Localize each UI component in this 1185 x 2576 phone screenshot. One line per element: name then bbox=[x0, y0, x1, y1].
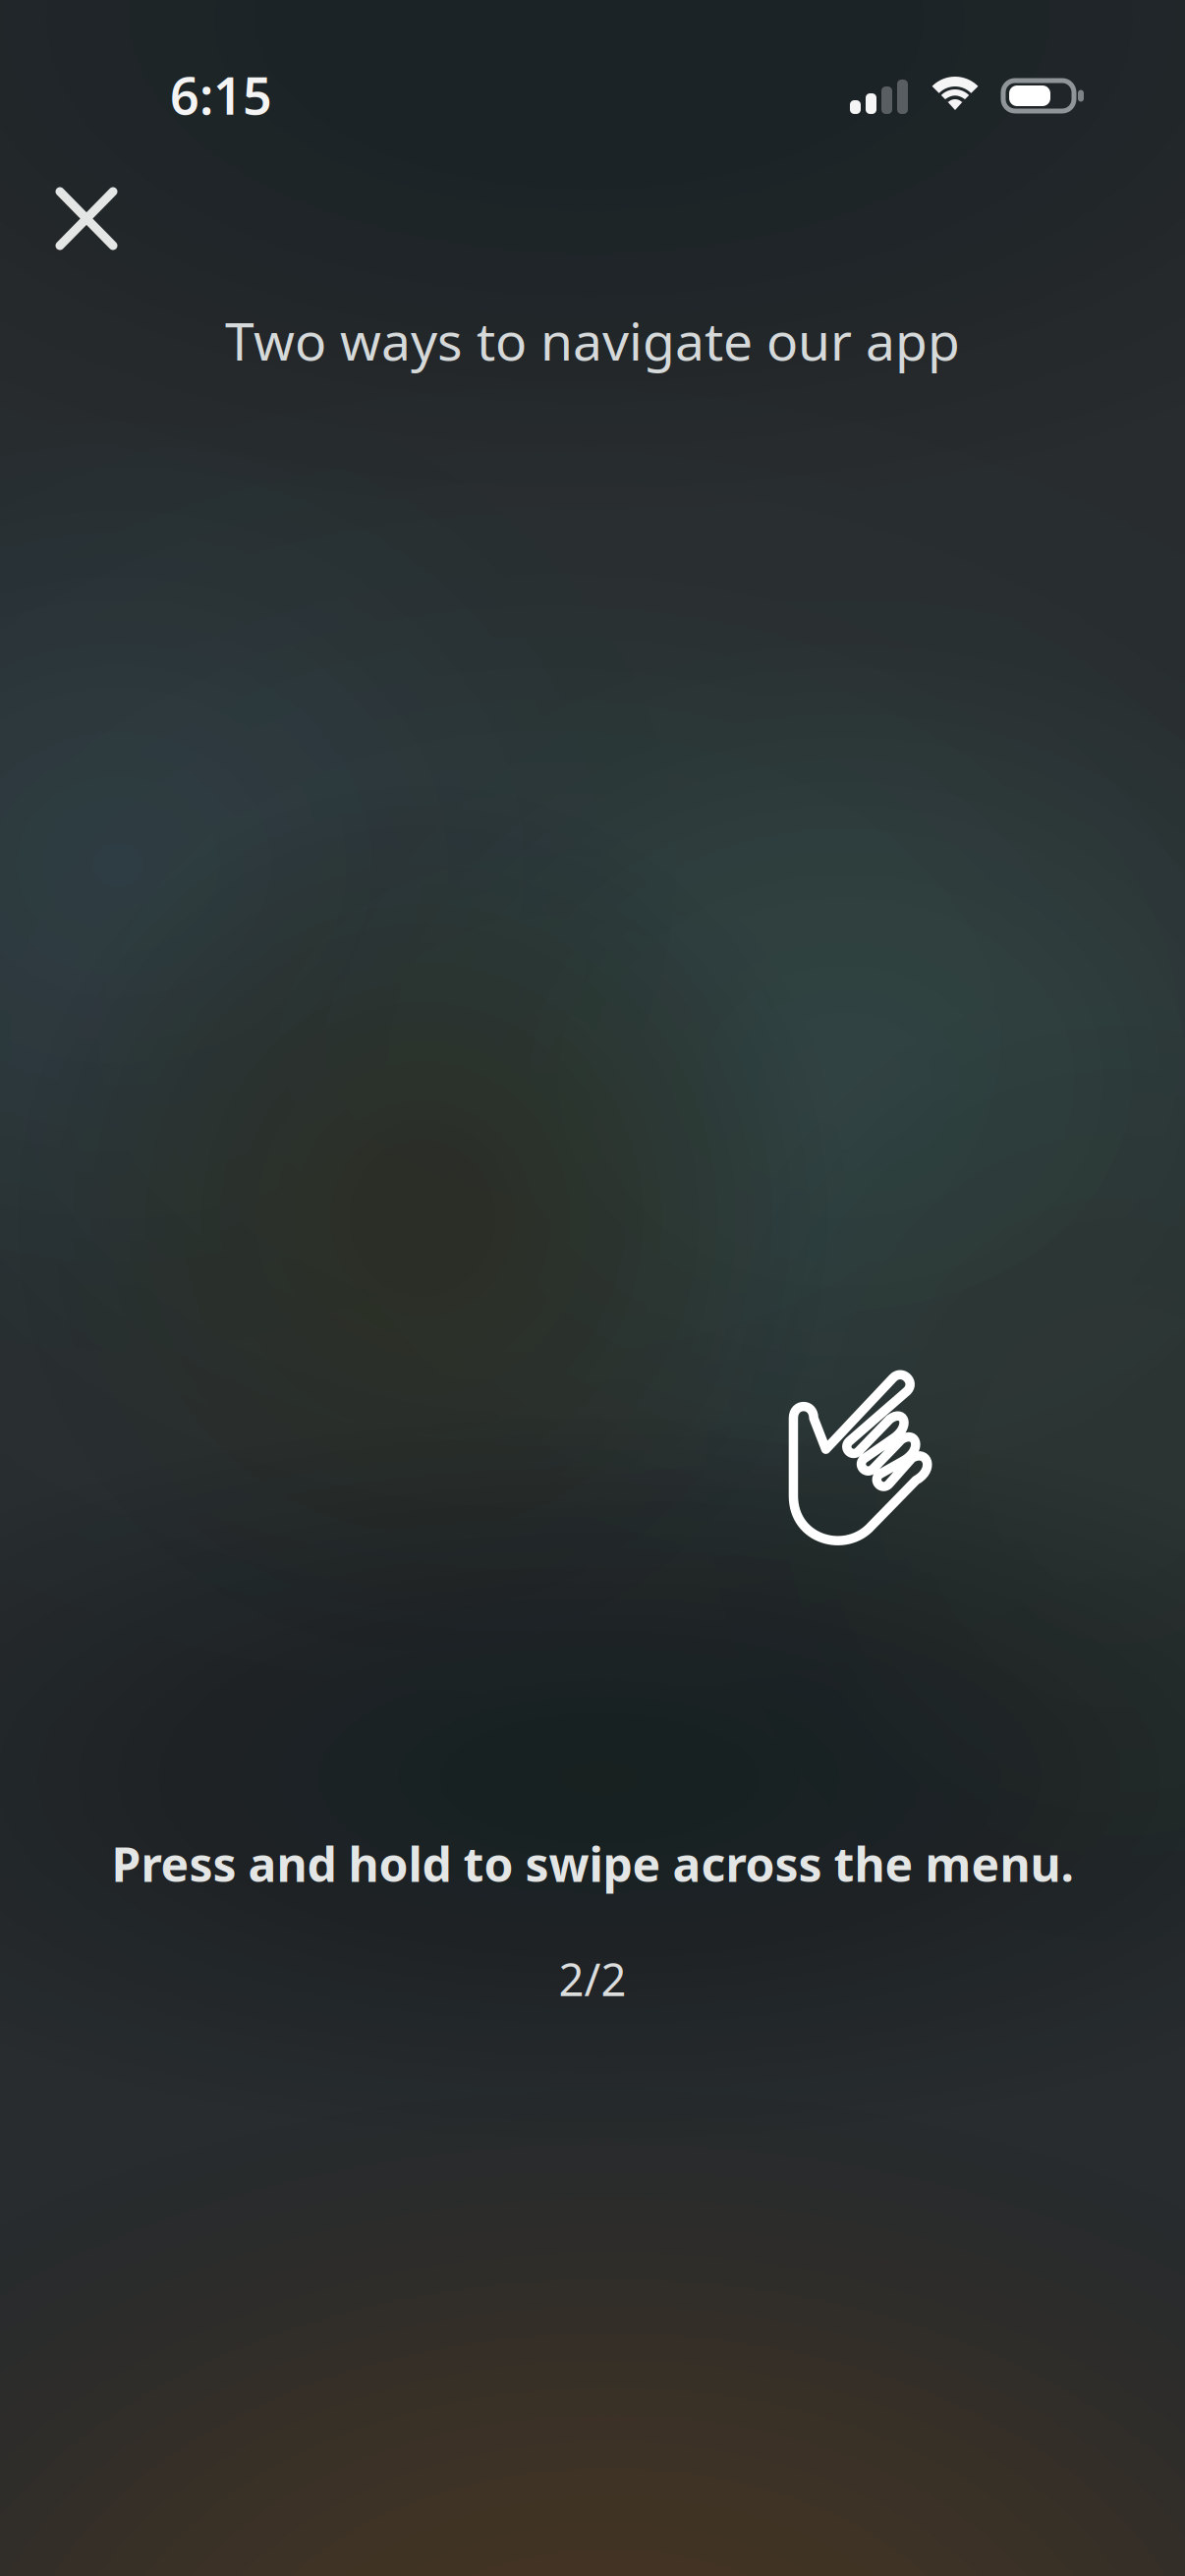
button[interactable]: Continue the walkthrough bbox=[0, 0, 1185, 2576]
staticText: 6:15 bbox=[170, 61, 272, 129]
staticText: Press and hold to swipe across the menu. bbox=[112, 1832, 1073, 1895]
button[interactable]: Close bbox=[30, 162, 142, 275]
staticText: 2/2 bbox=[559, 1949, 626, 2008]
staticText: Two ways to navigate our app bbox=[225, 306, 960, 375]
